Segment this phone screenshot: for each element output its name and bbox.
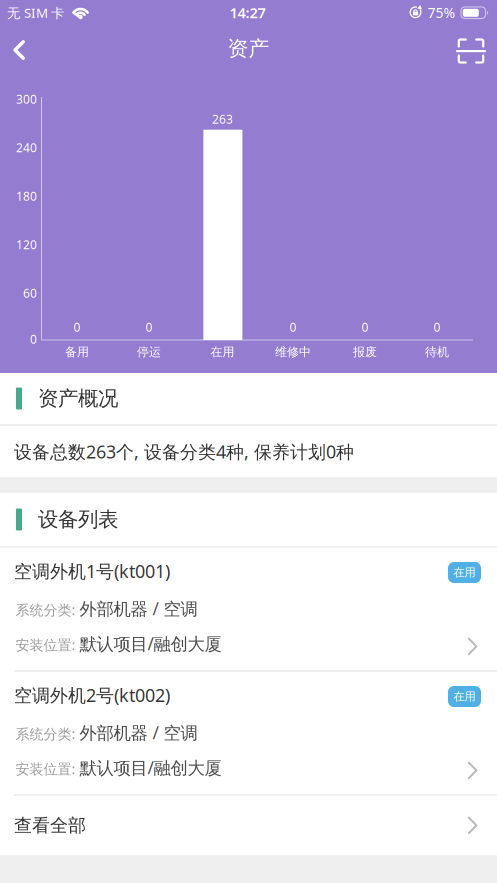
staticText: 在用: [453, 565, 475, 580]
staticText: 180: [16, 188, 37, 204]
staticText: 默认项目/融创大厦: [79, 756, 221, 779]
staticText: 300: [16, 91, 37, 107]
staticText: 备用: [65, 344, 89, 359]
staticText: 60: [23, 285, 37, 301]
staticText: 安装位置:: [15, 759, 79, 778]
staticText: 系统分类:: [15, 724, 79, 743]
staticText: 无 SIM 卡: [7, 4, 64, 22]
staticText: 默认项目/融创大厦: [79, 632, 221, 655]
staticText: 空调外机2号(kt002): [14, 683, 170, 707]
staticText: 查看全部: [14, 814, 86, 837]
button[interactable]: 空调外机1号(kt001): [0, 548, 497, 670]
staticText: 系统分类:: [15, 600, 79, 619]
staticText: 0: [361, 319, 368, 335]
staticText: 在用: [453, 689, 475, 704]
staticText: 14:27: [229, 2, 265, 22]
staticText: 0: [145, 319, 152, 335]
staticText: 75%: [427, 3, 455, 22]
staticText: 待机: [425, 344, 449, 359]
staticText: 120: [16, 236, 37, 253]
staticText: 安装位置:: [15, 635, 79, 654]
staticText: 在用: [210, 344, 234, 359]
staticText: 资产概况: [38, 386, 118, 411]
button[interactable]: [449, 28, 493, 72]
staticText: 0: [289, 319, 296, 335]
staticText: 报废: [353, 344, 377, 359]
staticText: 0: [73, 319, 80, 335]
button[interactable]: [0, 28, 44, 72]
staticText: 维修中: [275, 344, 311, 359]
button[interactable]: 空调外机2号(kt002): [0, 672, 497, 794]
staticText: 空调外机1号(kt001): [14, 559, 170, 583]
staticText: 设备总数263个, 设备分类4种, 保养计划0种: [14, 439, 354, 464]
staticText: 0: [433, 319, 440, 335]
staticText: 外部机器 / 空调: [79, 597, 197, 620]
staticText: 设备列表: [38, 507, 118, 532]
staticText: 外部机器 / 空调: [79, 721, 197, 744]
button[interactable]: 查看全部: [0, 796, 497, 855]
staticText: 263: [212, 111, 233, 127]
staticText: 停运: [137, 344, 161, 359]
staticText: 240: [16, 139, 37, 156]
staticText: 0: [30, 331, 37, 347]
staticText: 资产: [227, 35, 269, 62]
